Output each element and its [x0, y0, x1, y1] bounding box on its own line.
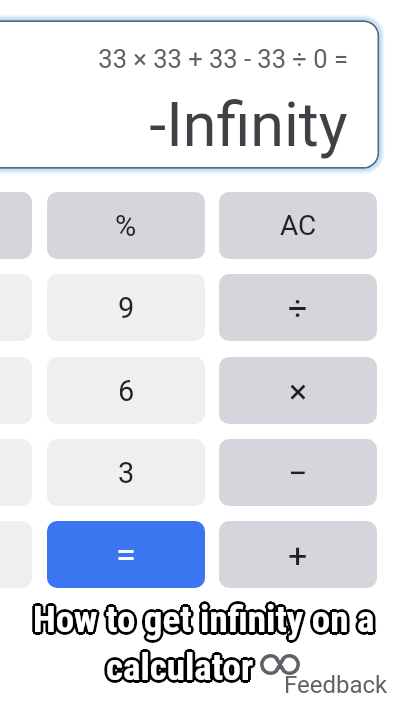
button[interactable]: Multiply [219, 357, 377, 424]
staticText: 6 [118, 374, 135, 408]
button[interactable]: Clear entry [0, 192, 32, 259]
button[interactable]: Divide [219, 274, 377, 341]
staticText: ÷ [288, 288, 308, 328]
button[interactable]: All clear [219, 192, 377, 259]
button[interactable]: Equals [47, 521, 205, 588]
staticText: + [288, 535, 308, 575]
button[interactable]: Six [47, 357, 205, 424]
button[interactable]: Plus [219, 521, 377, 588]
button[interactable]: Percent [47, 192, 205, 259]
staticText: = [116, 534, 136, 576]
staticText: − [288, 453, 308, 493]
staticText: × [289, 371, 308, 411]
staticText: Feedback [284, 671, 388, 699]
staticText: AC [280, 209, 317, 242]
button[interactable]: Nine [47, 274, 205, 341]
staticText: 3 [118, 456, 135, 490]
staticText: % [115, 209, 137, 243]
button[interactable]: Three [47, 439, 205, 506]
button[interactable]: Feedback [284, 671, 388, 699]
other: Infinity [260, 654, 300, 675]
button[interactable]: Minus [219, 439, 377, 506]
staticText: 9 [118, 291, 135, 325]
